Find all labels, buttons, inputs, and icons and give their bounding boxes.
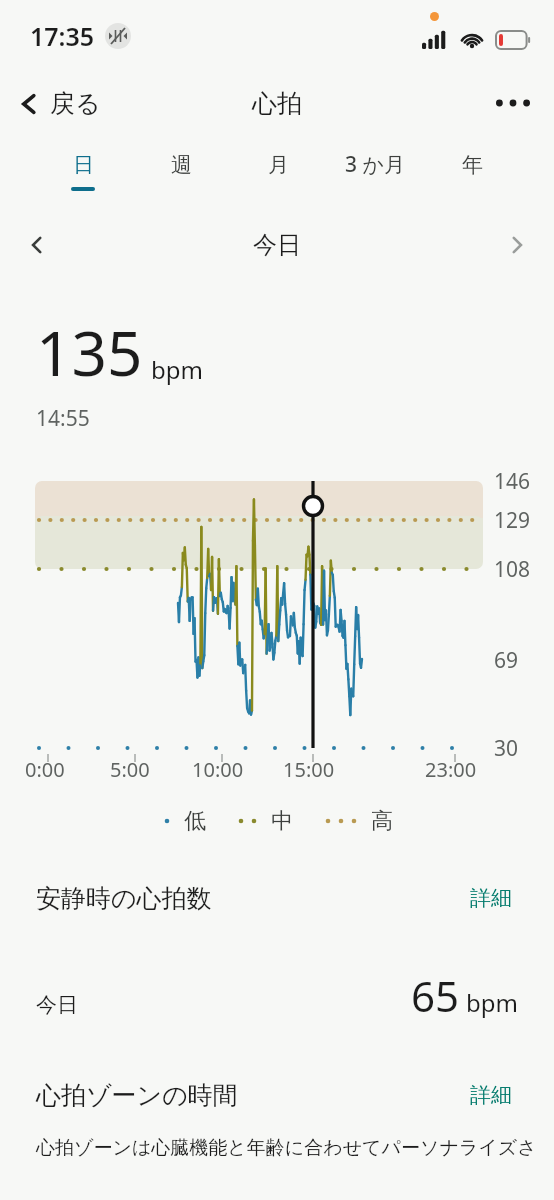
button[interactable]: 前日 [0, 220, 68, 270]
staticText: 日 [73, 152, 94, 178]
staticText: 65 [411, 967, 460, 1024]
staticText: 心拍ゾーンは心臓機能と年齢に合わせてパーソナライズさ [36, 1136, 537, 1160]
button[interactable]: 月 [229, 134, 326, 208]
staticText: 高 [371, 807, 393, 835]
staticText: 今日 [36, 992, 78, 1018]
staticText: 23:00 [425, 756, 477, 783]
button[interactable]: 戻る [0, 82, 113, 125]
staticText: 3 か月 [345, 150, 405, 179]
staticText: 17:35 [30, 19, 95, 53]
staticText: 5:00 [110, 756, 150, 783]
staticText: 心拍ゾーンの時間 [36, 1080, 238, 1111]
staticText: 週 [171, 152, 192, 178]
staticText: 129 [494, 506, 531, 535]
button[interactable]: 日 [34, 134, 132, 208]
staticText: 30 [494, 734, 519, 763]
staticText: bpm [466, 986, 518, 1019]
button[interactable]: 3 か月 [326, 134, 423, 208]
staticText: 69 [494, 646, 519, 675]
button[interactable]: 詳細 [464, 1076, 518, 1114]
staticText: 15:00 [283, 756, 335, 783]
staticText: 月 [268, 152, 289, 178]
staticText: 詳細 [470, 885, 512, 911]
button[interactable]: 年 [423, 134, 520, 208]
staticText: 10:00 [192, 756, 244, 783]
staticText: 低 [184, 807, 206, 835]
button[interactable]: 週 [132, 134, 229, 208]
staticText: 詳細 [470, 1082, 512, 1108]
staticText: 135 [36, 310, 143, 394]
staticText: 中 [271, 807, 293, 835]
button[interactable]: 翌日 [486, 220, 554, 270]
staticText: 安静時の心拍数 [36, 883, 212, 914]
staticText: 今日 [253, 230, 301, 260]
staticText: 14:55 [36, 404, 90, 433]
staticText: 108 [494, 555, 531, 584]
staticText: bpm [151, 353, 203, 386]
staticText: 戻る [50, 88, 101, 119]
staticText: 心拍 [252, 88, 302, 119]
staticText: 0:00 [25, 756, 65, 783]
button[interactable]: その他のオプション [472, 85, 554, 121]
button[interactable]: 詳細 [464, 879, 518, 917]
staticText: 年 [462, 152, 483, 178]
staticText: 146 [494, 467, 531, 496]
